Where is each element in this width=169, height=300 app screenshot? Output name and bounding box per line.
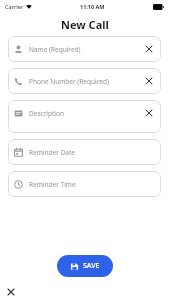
staticText: Carrier bbox=[5, 3, 24, 10]
button[interactable]: Name (Required) bbox=[8, 36, 161, 62]
button[interactable]: Reminder Date bbox=[8, 139, 161, 165]
button[interactable]: Clear Phone number bbox=[143, 75, 155, 87]
staticText: Reminder Time bbox=[29, 180, 76, 189]
button[interactable]: Reminder Time bbox=[8, 171, 161, 197]
button[interactable]: Clear Description bbox=[143, 107, 155, 119]
button[interactable]: Phone Number (Required) bbox=[8, 68, 161, 94]
button[interactable]: SAVE bbox=[57, 255, 113, 277]
staticText: Phone Number (Required) bbox=[29, 77, 109, 86]
staticText: Name (Required) bbox=[29, 45, 81, 54]
button[interactable]: Close bbox=[4, 285, 18, 299]
button[interactable]: Description bbox=[8, 100, 161, 133]
staticText: 11:10 AM bbox=[80, 3, 105, 10]
staticText: SAVE bbox=[83, 261, 100, 271]
staticText: Reminder Date bbox=[29, 148, 75, 157]
button[interactable]: Clear Name bbox=[143, 43, 155, 55]
staticText: New Call bbox=[61, 17, 109, 32]
staticText: Description bbox=[29, 109, 64, 118]
